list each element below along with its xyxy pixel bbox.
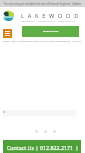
staticText: CONTACT xyxy=(72,40,82,43)
button[interactable]: Request Info xyxy=(22,26,79,37)
staticText: | xyxy=(74,144,79,151)
staticText: SERVICES xyxy=(22,40,32,43)
staticText: LAKEWOOD xyxy=(21,12,83,20)
staticText: ABOUT US xyxy=(11,40,22,43)
button[interactable]: Slide 1 xyxy=(35,130,38,133)
button[interactable]: 612.822.2171 xyxy=(40,144,74,151)
button[interactable]: ABOUT US xyxy=(11,40,22,43)
staticText: 612.822.2171 xyxy=(40,144,74,151)
button[interactable]: SERVICES xyxy=(22,40,32,43)
staticText: RESOURCES xyxy=(58,40,71,43)
button[interactable]: RESOURCES xyxy=(58,40,71,43)
staticText: You are using an outdated version of Int… xyxy=(4,2,81,6)
button[interactable]: Slide 2 xyxy=(44,130,47,133)
staticText: | xyxy=(34,144,40,151)
button[interactable]: Lakewood home xyxy=(3,10,14,21)
staticText: EVENTS xyxy=(50,40,58,43)
staticText: HOME xyxy=(3,40,10,43)
button[interactable]: EVENTS xyxy=(50,40,58,43)
button[interactable]: CONTACT xyxy=(72,40,82,43)
button[interactable]: Slide 3 xyxy=(53,130,56,133)
staticText: Contact Us xyxy=(7,144,34,151)
staticText: PRE-PLANNING xyxy=(33,40,49,43)
button[interactable]: Menu xyxy=(3,29,12,38)
staticText: CEMETERY · CREMATION · COMMUNITY xyxy=(21,20,76,23)
button[interactable]: PRE-PLANNING xyxy=(33,40,49,43)
button[interactable]: Contact Us xyxy=(7,144,34,151)
button[interactable]: LAKEWOOD xyxy=(21,12,83,23)
staticText: Request Info xyxy=(43,29,59,32)
button[interactable]: HOME xyxy=(3,40,10,43)
